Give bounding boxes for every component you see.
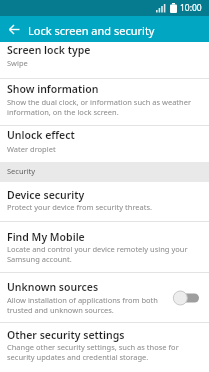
staticText: Water droplet <box>7 144 56 154</box>
button[interactable]: Other security settings <box>0 323 209 372</box>
button[interactable]: Unknown sources <box>0 273 209 322</box>
button[interactable]: Find My Mobile <box>0 222 209 272</box>
button[interactable]: Lock screen and security <box>0 16 209 42</box>
staticText: Protect your device from security threat… <box>7 202 153 212</box>
button[interactable]: Unlock effect <box>0 126 209 162</box>
staticText: Change other security settings, such as … <box>7 342 179 362</box>
staticText: Show information <box>7 82 99 96</box>
button[interactable]: Device security <box>0 182 209 221</box>
staticText: Show the dual clock, or information such… <box>7 97 192 117</box>
staticText: Screen lock type <box>7 43 91 57</box>
staticText: Swipe <box>7 58 28 68</box>
staticText: Security <box>7 166 36 176</box>
staticText: Locate and control your device remotely … <box>7 244 188 264</box>
button[interactable]: Screen lock type <box>0 42 209 78</box>
staticText: Find My Mobile <box>7 230 85 244</box>
button[interactable]: Show information <box>0 79 209 125</box>
staticText: Other security settings <box>7 328 125 342</box>
staticText: Unknown sources <box>7 280 99 294</box>
staticText: Lock screen and security <box>28 23 155 38</box>
staticText: Unlock effect <box>7 128 75 142</box>
staticText: Allow installation of applications from … <box>7 295 158 315</box>
staticText: 10:00 <box>180 2 202 14</box>
staticText: Device security <box>7 188 85 202</box>
